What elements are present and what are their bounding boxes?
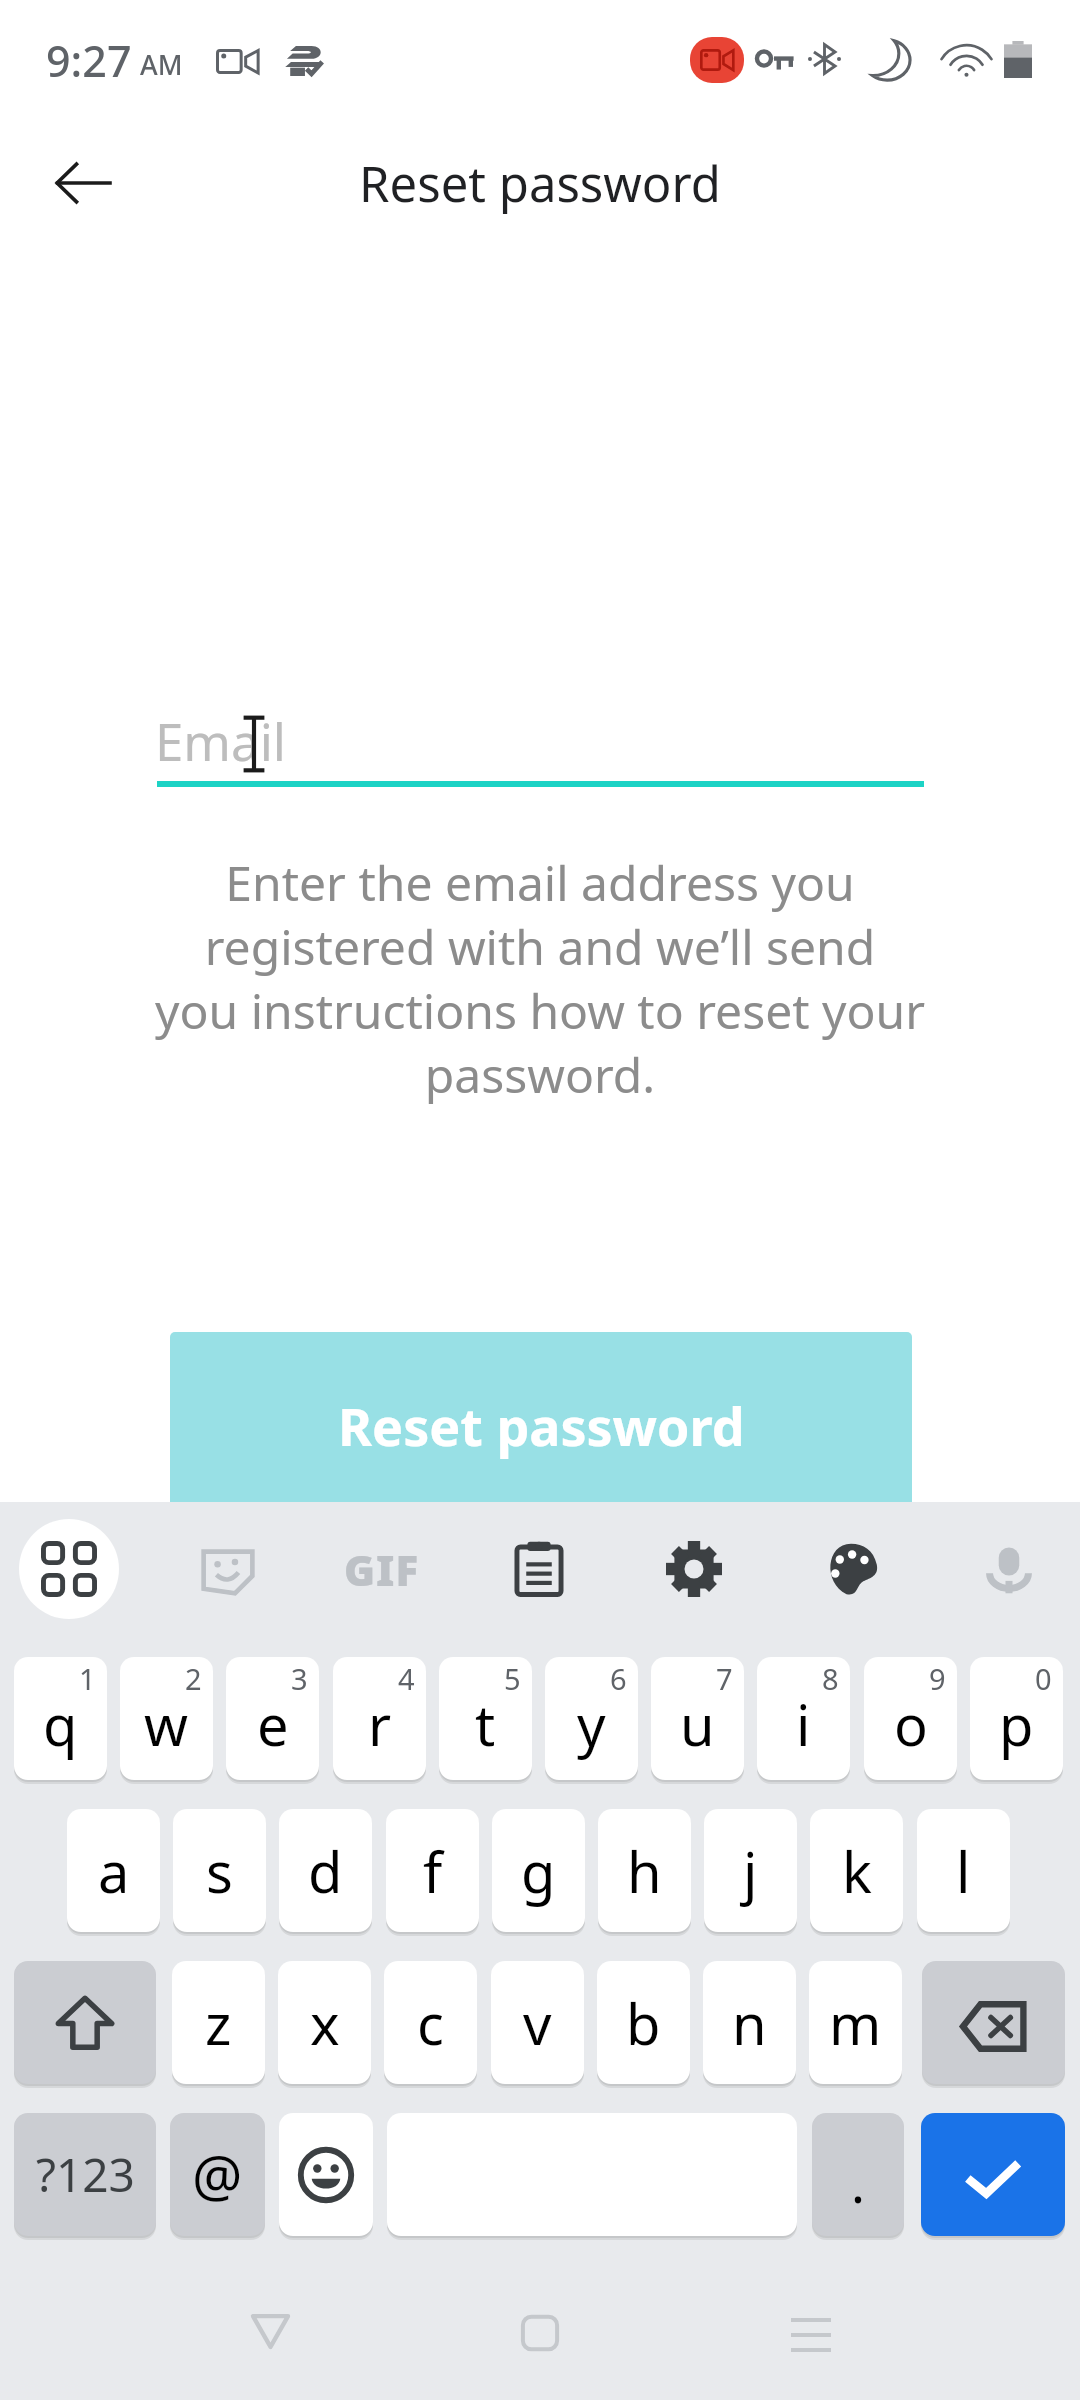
button[interactable]: n [703, 1961, 796, 2084]
staticText: r [368, 1686, 392, 1762]
button[interactable]: w [120, 1657, 213, 1780]
staticText: 7 [716, 1659, 733, 1698]
staticText: @ [192, 2137, 243, 2213]
staticText: w [144, 1686, 189, 1762]
button[interactable]: Recents [756, 2280, 866, 2390]
button[interactable]: z [172, 1961, 265, 2084]
staticText: b [626, 1985, 661, 2061]
staticText: g [521, 1833, 556, 1909]
button[interactable]: x [278, 1961, 371, 2084]
staticText: . [851, 2147, 865, 2218]
staticText: k [842, 1833, 872, 1909]
button[interactable]: c [384, 1961, 477, 2084]
staticText: f [423, 1833, 443, 1909]
staticText: s [206, 1833, 233, 1909]
button[interactable]: Themes [801, 1519, 901, 1619]
button[interactable]: q [14, 1657, 107, 1780]
staticText: 9 [929, 1659, 946, 1698]
button[interactable]: r [333, 1657, 426, 1780]
staticText: v [523, 1985, 552, 2061]
button[interactable]: Stickers [178, 1519, 278, 1619]
staticText: l [956, 1833, 971, 1909]
staticText: Reset password [0, 150, 1080, 217]
staticText: d [308, 1833, 343, 1909]
staticText: AM [140, 46, 183, 83]
button[interactable] [14, 1961, 156, 2084]
button[interactable]: m [809, 1961, 902, 2084]
staticText: p [999, 1686, 1034, 1762]
button[interactable]: l [917, 1809, 1010, 1932]
button[interactable]: y [545, 1657, 638, 1780]
button[interactable]: Reset password [170, 1332, 912, 1522]
staticText: 4 [398, 1659, 415, 1698]
button[interactable]: h [598, 1809, 691, 1932]
staticText: q [43, 1686, 78, 1762]
staticText: c [417, 1985, 444, 2061]
button[interactable]: Voice input [959, 1519, 1059, 1619]
staticText: 6 [610, 1659, 627, 1698]
staticText: i [796, 1686, 811, 1762]
button[interactable] [921, 2113, 1065, 2236]
staticText: Enter the email address you registered w… [0, 850, 1080, 1107]
button[interactable]: j [704, 1809, 797, 1932]
button[interactable]: f [386, 1809, 479, 1932]
staticText: n [732, 1985, 767, 2061]
button[interactable]: t [439, 1657, 532, 1780]
button[interactable]: v [491, 1961, 584, 2084]
staticText: o [894, 1686, 928, 1762]
button[interactable]: p [970, 1657, 1063, 1780]
button[interactable]: k [810, 1809, 903, 1932]
staticText: t [475, 1686, 496, 1762]
button[interactable]: Clipboard [489, 1519, 589, 1619]
staticText: 3 [291, 1659, 308, 1698]
button[interactable]: a [67, 1809, 160, 1932]
button[interactable] [922, 1961, 1065, 2084]
staticText: z [205, 1985, 232, 2061]
button[interactable]: ?123 [14, 2113, 156, 2236]
button[interactable] [279, 2113, 373, 2236]
staticText: 9:27 [46, 31, 132, 90]
button[interactable]: s [173, 1809, 266, 1932]
staticText: 0 [1035, 1659, 1052, 1698]
staticText: e [257, 1686, 289, 1762]
button[interactable]: Home [485, 2278, 595, 2388]
button[interactable]: . [812, 2113, 904, 2236]
button[interactable]: Settings [644, 1519, 744, 1619]
staticText: 1 [79, 1659, 96, 1698]
staticText: j [743, 1833, 758, 1909]
staticText: GIF [344, 1541, 420, 1598]
button[interactable]: Back [215, 2276, 325, 2386]
staticText: Reset password [338, 1390, 745, 1461]
button[interactable]: o [864, 1657, 957, 1780]
staticText: y [577, 1686, 606, 1762]
button[interactable]: d [279, 1809, 372, 1932]
button[interactable]: u [651, 1657, 744, 1780]
staticText: 2 [185, 1659, 202, 1698]
staticText: Email [155, 706, 286, 775]
staticText: a [98, 1833, 130, 1909]
button[interactable]: GIF [332, 1519, 432, 1619]
button[interactable]: g [492, 1809, 585, 1932]
button[interactable]: e [226, 1657, 319, 1780]
staticText: 5 [504, 1659, 521, 1698]
button[interactable]: b [597, 1961, 690, 2084]
button[interactable]: @ [170, 2113, 265, 2236]
staticText: u [680, 1686, 715, 1762]
button[interactable]: Keyboard modes [19, 1519, 119, 1619]
button[interactable]: Back [37, 137, 129, 229]
staticText: m [829, 1985, 882, 2061]
button[interactable]: i [757, 1657, 850, 1780]
staticText: h [627, 1833, 662, 1909]
staticText: x [310, 1985, 340, 2061]
staticText: 8 [822, 1659, 839, 1698]
staticText: ?123 [36, 2143, 135, 2206]
